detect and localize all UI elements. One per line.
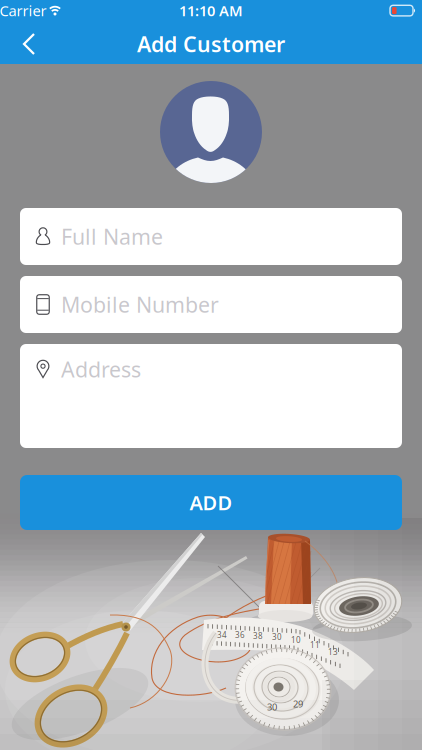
staticText: Carrier (0, 1, 46, 20)
staticText: 11 (310, 640, 320, 650)
staticText: Full Name (61, 222, 163, 251)
staticText: Address (61, 355, 141, 383)
staticText: 36 (235, 630, 245, 640)
staticText: 38 (253, 631, 263, 641)
staticText: Add Customer (137, 30, 285, 58)
staticText: 11:10 AM (179, 1, 243, 20)
button[interactable]: Mobile Number (20, 276, 402, 333)
staticText: 30 (267, 701, 277, 713)
button[interactable] (160, 81, 262, 183)
button[interactable]: Full Name (20, 208, 402, 265)
button[interactable]: ADD (20, 475, 402, 530)
staticText: 34 (217, 630, 227, 640)
staticText: ADD (189, 489, 232, 516)
staticText: 10 (291, 635, 301, 645)
staticText: 13 (328, 647, 338, 657)
button[interactable] (22, 32, 36, 56)
staticText: Mobile Number (61, 290, 219, 319)
staticText: 29 (293, 698, 303, 710)
button[interactable]: Address (20, 344, 402, 448)
staticText: 30 (272, 632, 282, 642)
